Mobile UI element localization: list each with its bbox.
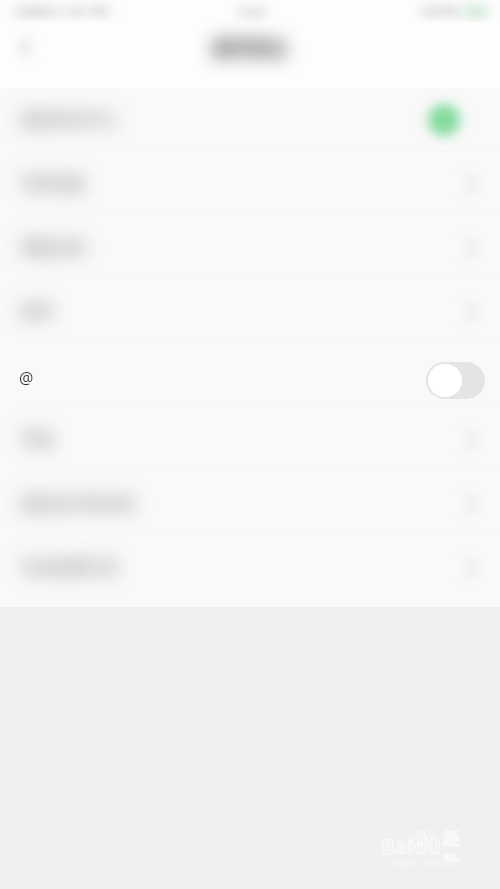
- staticText: 10:24: [237, 4, 266, 19]
- staticText: 手机: [22, 430, 54, 450]
- button[interactable]: 登录设备: [0, 152, 500, 216]
- staticText: 紧急冻结: [22, 238, 86, 258]
- staticText: 安全检测工具: [22, 558, 118, 578]
- button[interactable]: @: [0, 344, 500, 408]
- staticText: 经验: [443, 830, 473, 861]
- staticText: @: [19, 367, 34, 389]
- button[interactable]: 微信支付安全保: [0, 472, 500, 536]
- button[interactable]: 紧急冻结: [0, 216, 500, 280]
- staticText: Baidu: [381, 832, 441, 861]
- staticText: 中国移动 ıl ıl 4G WiFi: [14, 4, 110, 18]
- button[interactable]: 账号: [0, 280, 500, 344]
- button[interactable]: 安全检测工具: [0, 536, 500, 600]
- staticText: 微信支付安全保: [22, 494, 134, 514]
- staticText: 登录设备: [22, 174, 86, 194]
- staticText: 账号安全: [214, 38, 286, 61]
- button[interactable]: 微信安全中心: [0, 88, 500, 152]
- staticText: 账号: [22, 302, 54, 322]
- staticText: 微信安全中心: [22, 110, 118, 130]
- staticText: ıl 闹 86%: [420, 4, 461, 18]
